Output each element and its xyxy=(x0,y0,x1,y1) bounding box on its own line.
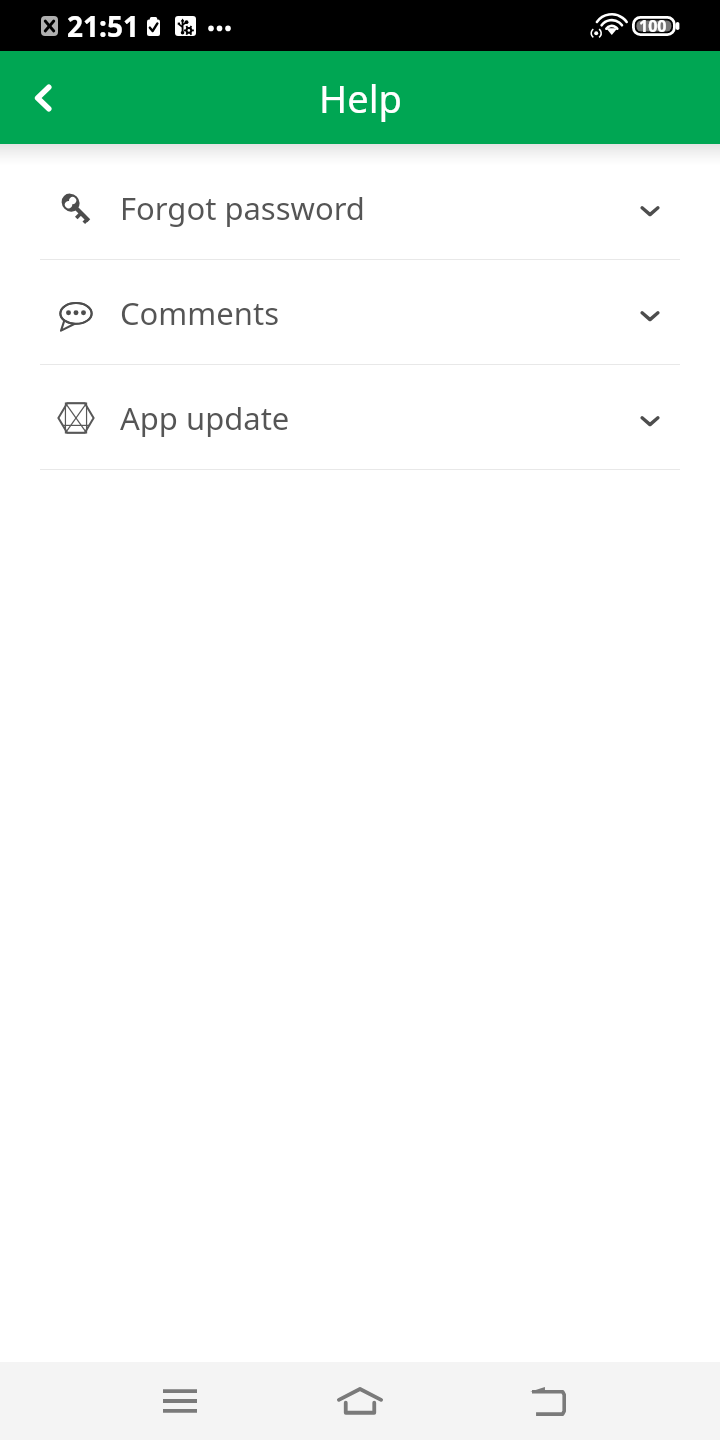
button[interactable]: Back xyxy=(12,66,76,130)
staticText: App update xyxy=(120,397,290,439)
button[interactable]: Back xyxy=(517,1369,581,1433)
button[interactable]: Forgot password xyxy=(0,155,720,260)
staticText: 21:51 xyxy=(67,7,139,45)
button[interactable]: Comments xyxy=(0,260,720,365)
button[interactable]: App update xyxy=(0,365,720,470)
button[interactable]: Home xyxy=(328,1369,392,1433)
staticText: 100 xyxy=(639,15,667,37)
button[interactable]: Recent apps xyxy=(148,1369,212,1433)
staticText: Comments xyxy=(120,292,279,334)
staticText: Help xyxy=(319,72,402,124)
staticText: Forgot password xyxy=(120,187,365,229)
